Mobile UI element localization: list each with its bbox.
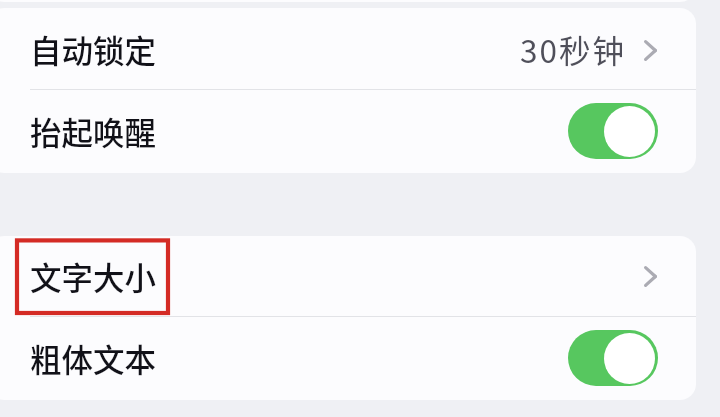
button[interactable]: 抬起唤醒 <box>0 90 696 173</box>
button[interactable]: Toggle on <box>568 103 658 159</box>
staticText: 30秒钟 <box>520 26 626 72</box>
other: Open text size <box>644 266 657 287</box>
staticText: 自动锁定 <box>30 26 157 72</box>
button[interactable]: 粗体文本 <box>0 316 696 400</box>
button[interactable]: Toggle on <box>568 330 658 386</box>
staticText: 文字大小 <box>30 253 157 299</box>
button[interactable]: 文字大小 <box>0 236 696 316</box>
staticText: 抬起唤醒 <box>30 108 157 154</box>
staticText: 粗体文本 <box>30 335 157 381</box>
button[interactable]: 自动锁定 <box>0 8 696 90</box>
